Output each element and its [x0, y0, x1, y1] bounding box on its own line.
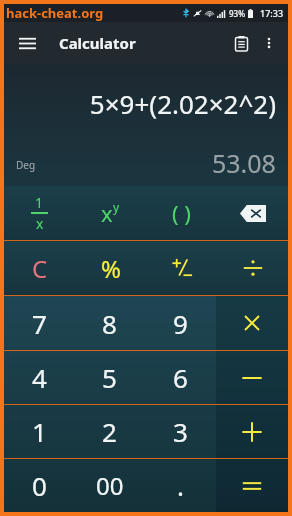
button[interactable]: 8 — [74, 296, 145, 350]
button[interactable]: 1 — [4, 405, 74, 458]
button[interactable]: 2 — [74, 405, 145, 458]
staticText: Deg — [16, 158, 36, 172]
button[interactable]: Multiply — [216, 296, 288, 350]
button[interactable]: 5×9+(2.02×2^2) — [4, 64, 288, 186]
staticText: . — [177, 468, 184, 503]
button[interactable]: 7 — [4, 296, 74, 350]
staticText: y — [113, 199, 120, 215]
button[interactable] — [217, 241, 288, 295]
staticText: 17:33 — [260, 7, 284, 19]
button[interactable]: Equals — [216, 459, 288, 512]
staticText: x — [36, 214, 44, 233]
button[interactable]: % — [75, 241, 146, 295]
staticText: 3 — [173, 414, 188, 449]
staticText: 9 — [173, 306, 188, 341]
staticText: x — [101, 198, 113, 228]
staticText: 8 — [102, 306, 117, 341]
staticText: % — [101, 252, 121, 285]
button[interactable]: Add — [216, 405, 288, 458]
button[interactable]: 00 — [74, 459, 145, 512]
staticText: ( ) — [172, 198, 191, 228]
button[interactable]: C — [4, 241, 75, 295]
staticText: 7 — [32, 306, 47, 341]
staticText: Calculator — [59, 33, 136, 53]
staticText: 0 — [32, 468, 47, 503]
button[interactable]: 1 — [4, 186, 75, 240]
staticText: 00 — [96, 469, 124, 502]
staticText: 1 — [32, 414, 47, 449]
button[interactable]: 5 — [74, 351, 145, 404]
button[interactable]: 6 — [145, 351, 216, 404]
button[interactable]: Subtract — [216, 351, 288, 404]
staticText: 6 — [173, 360, 188, 395]
staticText: C — [32, 252, 48, 285]
staticText: 53.08 — [212, 146, 276, 180]
staticText: 5×9+(2.02×2^2) — [89, 86, 276, 121]
button[interactable]: Menu — [14, 30, 40, 56]
staticText: 4 — [32, 360, 47, 395]
staticText: 2 — [102, 414, 117, 449]
button[interactable]: . — [145, 459, 216, 512]
staticText: 93% — [229, 8, 245, 19]
button[interactable]: History — [226, 28, 256, 58]
button[interactable]: 0 — [4, 459, 74, 512]
button[interactable]: Backspace — [217, 186, 288, 240]
button[interactable]: 4 — [4, 351, 74, 404]
staticText: 5 — [102, 360, 117, 395]
button[interactable]: 9 — [145, 296, 216, 350]
staticText: 1 — [35, 193, 44, 212]
button[interactable]: More options — [256, 30, 282, 56]
button[interactable]: 3 — [145, 405, 216, 458]
button[interactable] — [146, 241, 217, 295]
button[interactable]: x — [75, 186, 146, 240]
staticText: hack-cheat.org — [6, 4, 104, 22]
button[interactable]: ( ) — [146, 186, 217, 240]
